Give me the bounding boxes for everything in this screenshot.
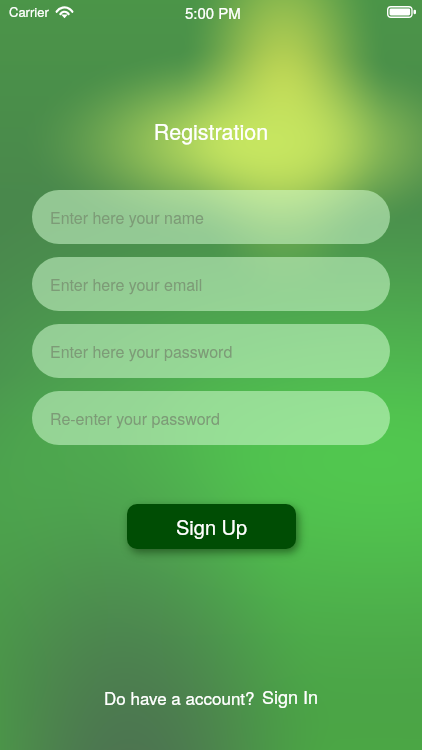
- staticText: 5:00 PM: [185, 2, 241, 23]
- button[interactable]: Sign In: [262, 683, 319, 709]
- staticText: Do have a account?: [104, 685, 255, 709]
- staticText: Sign Up: [176, 512, 248, 541]
- staticText: Carrier: [9, 2, 49, 21]
- other: Battery: [387, 6, 416, 18]
- staticText: Re-enter your password: [50, 407, 220, 430]
- staticText: Enter here your email: [50, 273, 203, 296]
- button[interactable]: Enter here your password: [32, 324, 390, 378]
- button[interactable]: Re-enter your password: [32, 391, 390, 445]
- staticText: Sign In: [262, 683, 319, 709]
- staticText: Registration: [0, 115, 422, 146]
- staticText: Enter here your name: [50, 206, 205, 229]
- other: Wi-Fi: [56, 6, 73, 17]
- button[interactable]: Sign Up: [127, 504, 296, 549]
- button[interactable]: Enter here your email: [32, 257, 390, 311]
- staticText: Enter here your password: [50, 340, 233, 363]
- button[interactable]: Enter here your name: [32, 190, 390, 244]
